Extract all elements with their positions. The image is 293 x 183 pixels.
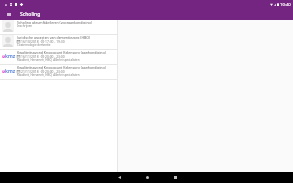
button[interactable]: Open navigation drawer (0, 9, 17, 20)
button[interactable]: Home (133, 172, 161, 183)
staticText: Coaternologie dementie (17, 43, 51, 47)
staticText: 17:30 - 19:30 (45, 39, 65, 43)
staticText: Kwaliteit, Hersenen, HBO, Allerlei speci… (17, 58, 80, 62)
staticText: 16/10/2018 (21, 39, 39, 43)
staticText: 16/11/2018 (21, 54, 39, 58)
button[interactable]: kmz (0, 65, 117, 80)
staticText: 20:00 - 23:00 (45, 69, 65, 73)
staticText: kmz (5, 53, 16, 60)
staticText: Juridische aspecten van dementiezorg (HB… (17, 35, 91, 39)
button[interactable]: Recent apps (161, 172, 189, 183)
staticText: Scholing akrumfäbrileren (vooraankondigi… (17, 20, 92, 24)
staticText: 21/11/2018 (21, 69, 39, 73)
button[interactable]: Back (105, 172, 133, 183)
staticText: kmz (5, 68, 16, 75)
button[interactable]: Juridische aspecten van dementiezorg (HB… (0, 35, 117, 50)
button[interactable]: kmz (0, 50, 117, 65)
staticText: Kwaliteitsavond Knooppunt Kelensorg (aan… (17, 50, 106, 54)
button[interactable]: Scholing akrumfäbrileren (vooraankondigi… (0, 20, 117, 35)
staticText: 20:00 - 23:00 (45, 54, 65, 58)
staticText: Scholing (20, 11, 41, 18)
staticText: 10:40 (280, 2, 291, 8)
staticText: Kwaliteit, Hersenen, HBO, Allerlei speci… (17, 73, 80, 77)
staticText: Inschrijven (17, 24, 33, 28)
staticText: Kwaliteitsavond Knooppunt Kelensorg (aan… (17, 65, 106, 69)
